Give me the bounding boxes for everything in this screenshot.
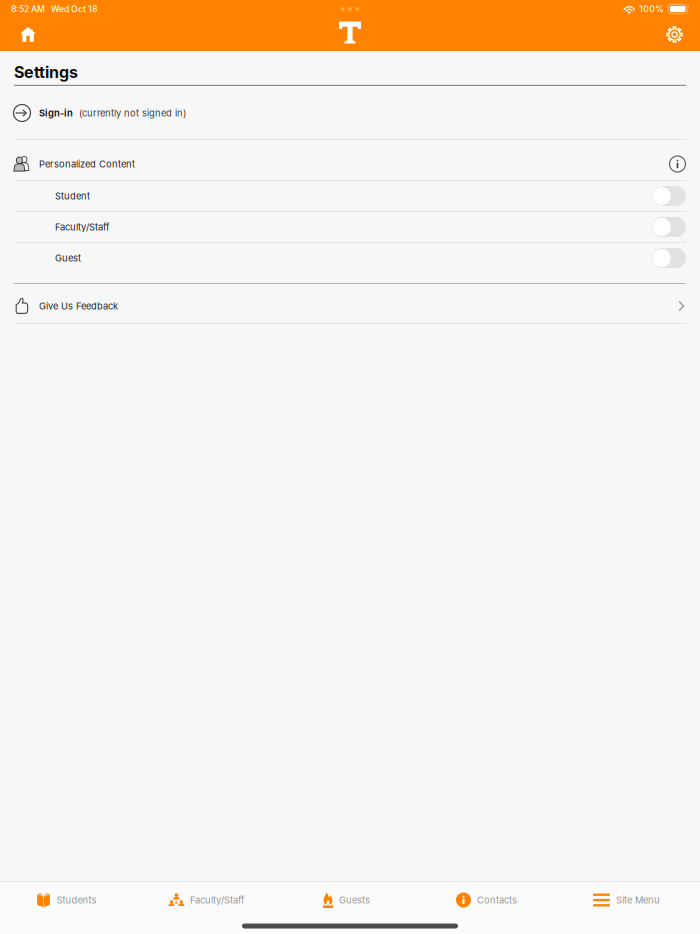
- button[interactable]: Site Menu: [560, 882, 700, 918]
- button[interactable]: Sign-in: [0, 86, 700, 139]
- staticText: Guest: [55, 252, 81, 264]
- staticText: Personalized Content: [39, 158, 135, 170]
- staticText: Student: [55, 190, 90, 202]
- staticText: Faculty/Staff: [55, 221, 109, 233]
- button[interactable]: Home: [0, 18, 57, 51]
- staticText: Contacts: [477, 894, 517, 906]
- button[interactable]: Faculty/Staff: [140, 882, 280, 918]
- button[interactable]: Guests: [280, 882, 420, 918]
- button[interactable]: Guest: [0, 243, 700, 273]
- button[interactable]: Contacts: [420, 882, 560, 918]
- button[interactable]: Personalized Content: [0, 148, 700, 180]
- staticText: Faculty/Staff: [190, 894, 244, 906]
- staticText: Students: [56, 894, 96, 906]
- button[interactable]: Give Us Feedback: [0, 284, 700, 323]
- staticText: Settings: [14, 62, 78, 82]
- staticText: 8:52 AM Wed Oct 18: [11, 4, 97, 14]
- staticText: (currently not signed in): [79, 107, 186, 119]
- staticText: Site Menu: [616, 894, 660, 906]
- button[interactable]: Students: [0, 882, 140, 918]
- button[interactable]: Settings: [649, 18, 700, 51]
- staticText: 100%: [639, 4, 664, 14]
- button[interactable]: Faculty/Staff: [0, 212, 700, 242]
- staticText: Give Us Feedback: [39, 300, 118, 312]
- staticText: Guests: [339, 894, 370, 906]
- staticText: Sign-in: [39, 107, 73, 119]
- button[interactable]: Student: [0, 181, 700, 211]
